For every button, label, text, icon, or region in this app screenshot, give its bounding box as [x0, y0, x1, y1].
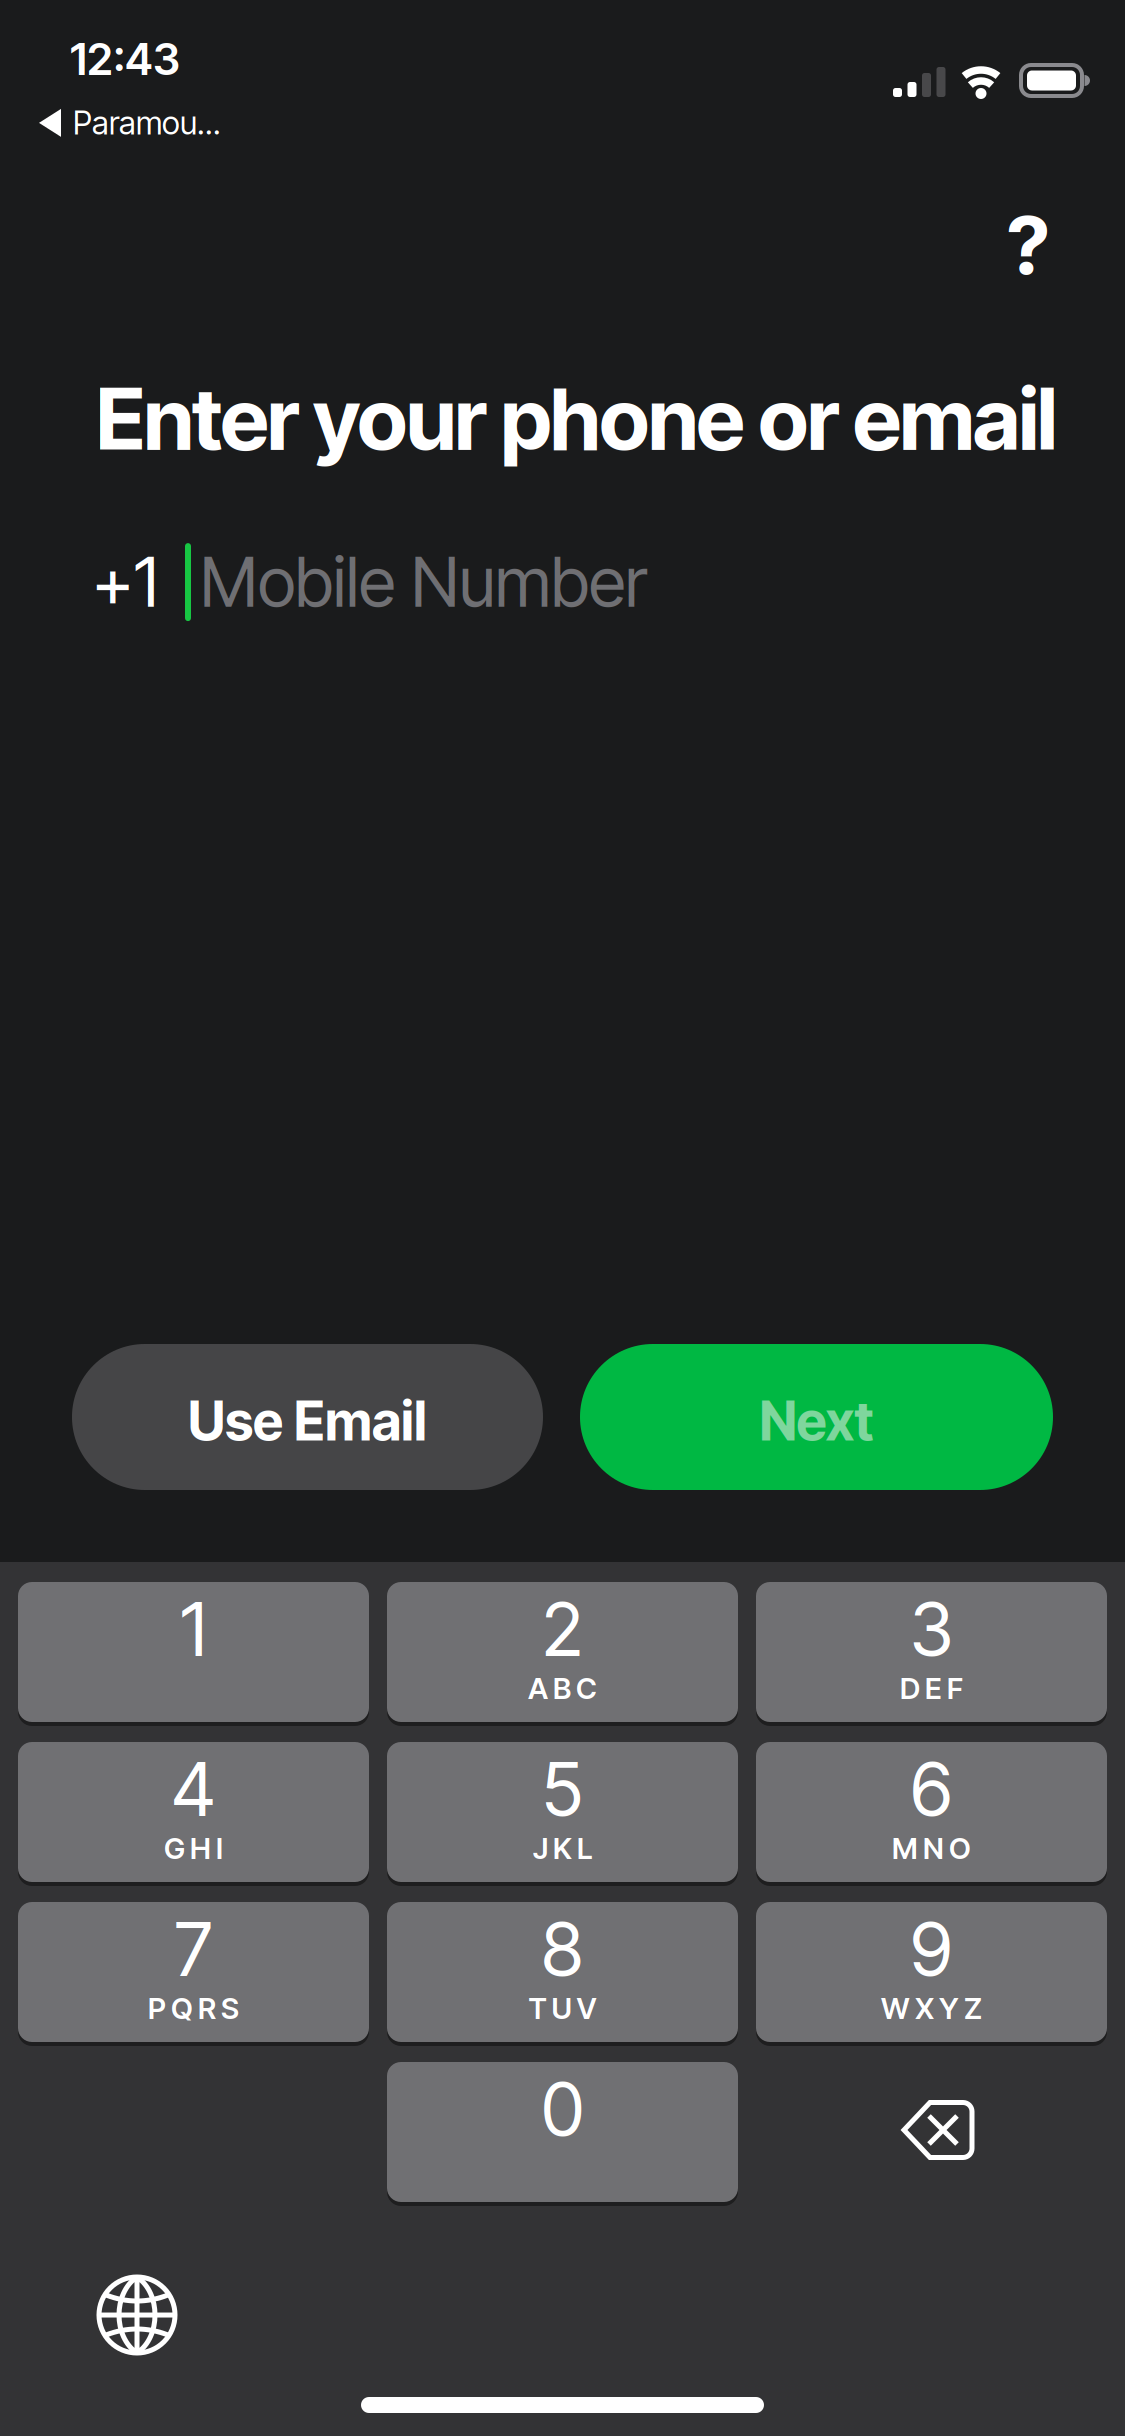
- staticText: ?: [1007, 198, 1049, 292]
- staticText: 6: [910, 1746, 952, 1832]
- button[interactable]: Change keyboard: [97, 2275, 177, 2355]
- staticText: Paramou...: [73, 104, 221, 142]
- staticText: 3: [910, 1586, 953, 1672]
- staticText: Mobile Number: [200, 542, 647, 622]
- button[interactable]: 9: [756, 1900, 1107, 2044]
- staticText: JKL: [533, 1831, 592, 1866]
- staticText: MNO: [892, 1831, 971, 1866]
- button[interactable]: 4: [18, 1740, 369, 1884]
- button[interactable]: Help: [978, 195, 1078, 295]
- staticText: Enter your phone or email: [96, 368, 1057, 469]
- button[interactable]: Use Email: [72, 1344, 543, 1490]
- staticText: 5: [542, 1746, 583, 1832]
- staticText: Next: [759, 1389, 873, 1452]
- button[interactable]: 8: [387, 1900, 738, 2044]
- staticText: 9: [910, 1906, 952, 1992]
- button[interactable]: 3: [756, 1580, 1107, 1724]
- staticText: 4: [171, 1746, 215, 1832]
- staticText: DEF: [900, 1671, 963, 1706]
- staticText: 8: [541, 1906, 583, 1992]
- button[interactable]: 0: [387, 2060, 738, 2204]
- staticText: 2: [542, 1586, 583, 1672]
- button[interactable]: Delete: [902, 2100, 974, 2160]
- staticText: PQRS: [148, 1991, 239, 2026]
- button[interactable]: 2: [387, 1580, 738, 1724]
- button[interactable]: 7: [18, 1900, 369, 2044]
- button[interactable]: 6: [756, 1740, 1107, 1884]
- staticText: ABC: [528, 1671, 597, 1706]
- button[interactable]: 5: [387, 1740, 738, 1884]
- button[interactable]: Back to Paramount: [39, 104, 221, 142]
- staticText: 0: [541, 2066, 583, 2152]
- staticText: 1: [180, 1586, 206, 1672]
- button[interactable]: 1: [18, 1580, 369, 1724]
- staticText: GHI: [164, 1831, 223, 1866]
- staticText: WXYZ: [881, 1991, 982, 2026]
- staticText: 7: [174, 1906, 212, 1992]
- staticText: Use Email: [188, 1389, 427, 1452]
- staticText: 12:43: [70, 33, 180, 85]
- staticText: TUV: [528, 1991, 596, 2026]
- staticText: +1: [92, 542, 158, 622]
- button[interactable]: Next: [580, 1344, 1053, 1490]
